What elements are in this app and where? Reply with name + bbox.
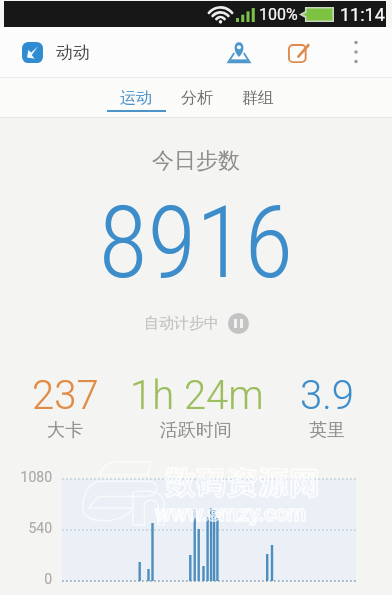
button[interactable]: 分析 — [166, 78, 227, 117]
staticText: 大卡 — [47, 419, 83, 442]
button[interactable]: 3.9 — [261, 372, 392, 442]
staticText: 100% — [259, 5, 298, 24]
button[interactable]: 运动 — [105, 78, 166, 117]
button[interactable]: 群组 — [227, 78, 288, 117]
staticText: 3.9 — [300, 372, 354, 419]
staticText: 8916 — [0, 184, 392, 301]
staticText: 群组 — [242, 88, 274, 108]
button[interactable]: More options — [337, 27, 375, 77]
staticText: 1h 24m — [130, 372, 261, 419]
button[interactable]: Map — [215, 27, 263, 77]
staticText: 分析 — [181, 88, 213, 108]
button[interactable]: Edit — [275, 27, 323, 77]
staticText: 11:14 — [340, 4, 385, 25]
staticText: 运动 — [120, 88, 152, 108]
staticText: 英里 — [309, 419, 345, 442]
staticText: 237 — [32, 372, 99, 419]
button[interactable]: 自动计步中 — [0, 313, 392, 334]
staticText: 活跃时间 — [160, 419, 232, 442]
staticText: 动动 — [56, 42, 90, 63]
staticText: 1080 — [0, 469, 52, 485]
staticText: 540 — [0, 520, 52, 536]
staticText: 今日步数 — [0, 147, 392, 175]
staticText: 自动计步中 — [144, 314, 219, 333]
staticText: 0 — [0, 571, 52, 587]
button[interactable]: 1h 24m — [130, 372, 261, 442]
button[interactable]: 237 — [0, 372, 130, 442]
